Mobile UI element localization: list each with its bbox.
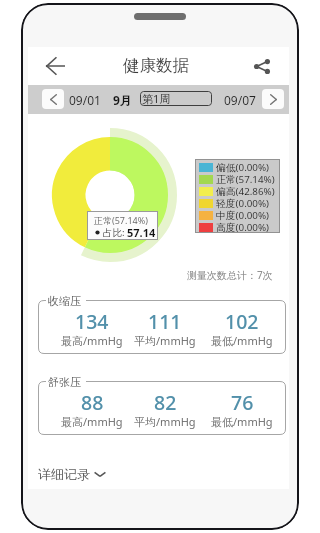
staticText: 健康数据 xyxy=(123,55,189,76)
button[interactable]: Previous week xyxy=(42,89,64,109)
button[interactable]: 详细记录 xyxy=(38,466,106,482)
staticText: 正常(57.14%) xyxy=(94,214,148,226)
staticText: 最低/mmHg xyxy=(211,414,273,429)
staticText: 最高/mmHg xyxy=(61,414,123,429)
staticText: 111 xyxy=(148,308,182,335)
staticText: 平均/mmHg xyxy=(134,414,196,429)
staticText: 9月 xyxy=(113,92,132,108)
staticText: 测量次数总计：7次 xyxy=(187,268,273,282)
staticText: 09/07 xyxy=(224,92,256,108)
staticText: 舒张压 xyxy=(48,375,81,389)
button[interactable]: 第1周 xyxy=(140,91,212,106)
staticText: 最低/mmHg xyxy=(211,333,273,348)
button[interactable]: Back xyxy=(40,51,71,81)
staticText: 详细记录 xyxy=(38,466,90,482)
staticText: 88 xyxy=(81,389,104,416)
staticText: 57.14 xyxy=(127,225,156,240)
staticText: 82 xyxy=(154,389,177,416)
staticText: 102 xyxy=(225,308,259,335)
staticText: 偏高(42.86%) xyxy=(216,185,275,197)
staticText: 高度(0.00%) xyxy=(216,221,270,233)
button[interactable]: Next week xyxy=(262,89,284,109)
button[interactable]: Share xyxy=(247,51,277,81)
staticText: 占比: xyxy=(103,226,125,239)
staticText: 第1周 xyxy=(142,91,171,106)
staticText: 正常(57.14%) xyxy=(216,173,275,185)
staticText: 收缩压 xyxy=(48,294,81,308)
staticText: 中度(0.00%) xyxy=(216,209,270,221)
staticText: 76 xyxy=(231,389,254,416)
staticText: 平均/mmHg xyxy=(134,333,196,348)
staticText: 偏低(0.00%) xyxy=(216,161,270,173)
staticText: 134 xyxy=(75,308,109,335)
staticText: 轻度(0.00%) xyxy=(216,197,270,209)
staticText: 09/01 xyxy=(69,92,101,108)
staticText: 最高/mmHg xyxy=(61,333,123,348)
